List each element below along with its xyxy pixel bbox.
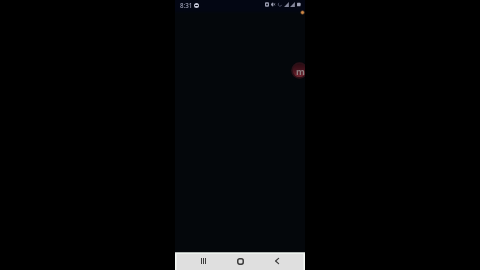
button[interactable]: Back [271,255,283,267]
staticText: m [296,65,305,77]
button[interactable]: Home [234,255,246,267]
button[interactable]: Recent apps [197,255,209,267]
staticText: 8:31 [180,1,193,9]
